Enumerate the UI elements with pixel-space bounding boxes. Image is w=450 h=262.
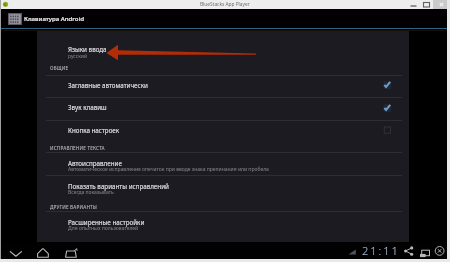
staticText: 21:11 <box>362 243 400 258</box>
button[interactable]: Заглавные автоматически <box>37 75 409 97</box>
button[interactable]: Android Keyboard <box>8 13 22 25</box>
staticText: Всегда показывать <box>68 189 114 196</box>
button[interactable]: Кнопка настроек <box>37 120 409 142</box>
staticText: русский <box>68 53 88 60</box>
button[interactable]: Показать варианты исправлений <box>37 175 409 198</box>
button[interactable]: Cast screen <box>418 246 432 259</box>
staticText: BlueStacks App Player <box>200 1 250 8</box>
button[interactable]: Автоисправление <box>37 152 409 175</box>
staticText: Автоматическое исправление опечаток при … <box>68 166 269 173</box>
staticText: Расширенные настройки <box>68 218 145 227</box>
staticText: Для опытных пользователей <box>68 225 139 232</box>
button[interactable]: Звук клавиш <box>37 97 409 120</box>
button[interactable]: Close window <box>433 0 450 9</box>
staticText: ДРУГИЕ ВАРИАНТЫ <box>50 204 98 210</box>
staticText: Заглавные автоматически <box>68 81 148 90</box>
staticText: Автоисправление <box>68 159 122 168</box>
button[interactable]: Recent apps <box>64 246 81 259</box>
button[interactable]: Home <box>36 246 53 259</box>
staticText: Звук клавиш <box>68 103 107 112</box>
button[interactable]: Maximize <box>420 0 433 9</box>
button[interactable]: Share <box>403 246 416 258</box>
staticText: Языки ввода <box>68 45 107 54</box>
button[interactable]: Back <box>9 246 23 259</box>
button[interactable]: Расширенные настройки <box>37 211 409 234</box>
staticText: Клавиатура Android <box>24 14 84 22</box>
button[interactable]: Minimize <box>407 0 420 9</box>
staticText: Показать варианты исправлений <box>68 182 169 191</box>
staticText: ОБЩИЕ <box>50 65 69 71</box>
button[interactable]: Языки ввода <box>37 31 409 65</box>
staticText: Кнопка настроек <box>68 126 120 135</box>
button[interactable]: Close app <box>434 245 447 259</box>
staticText: ИСПРАВЛЕНИЕ ТЕКСТА <box>50 145 105 151</box>
